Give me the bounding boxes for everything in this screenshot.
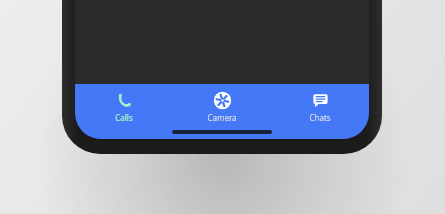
staticText: Calls	[115, 112, 133, 123]
button[interactable]: Chats	[271, 90, 369, 125]
staticText: Chats	[309, 112, 331, 123]
staticText: Camera	[207, 112, 237, 123]
button[interactable]: Calls	[75, 90, 173, 125]
button[interactable]: Camera	[173, 90, 271, 125]
